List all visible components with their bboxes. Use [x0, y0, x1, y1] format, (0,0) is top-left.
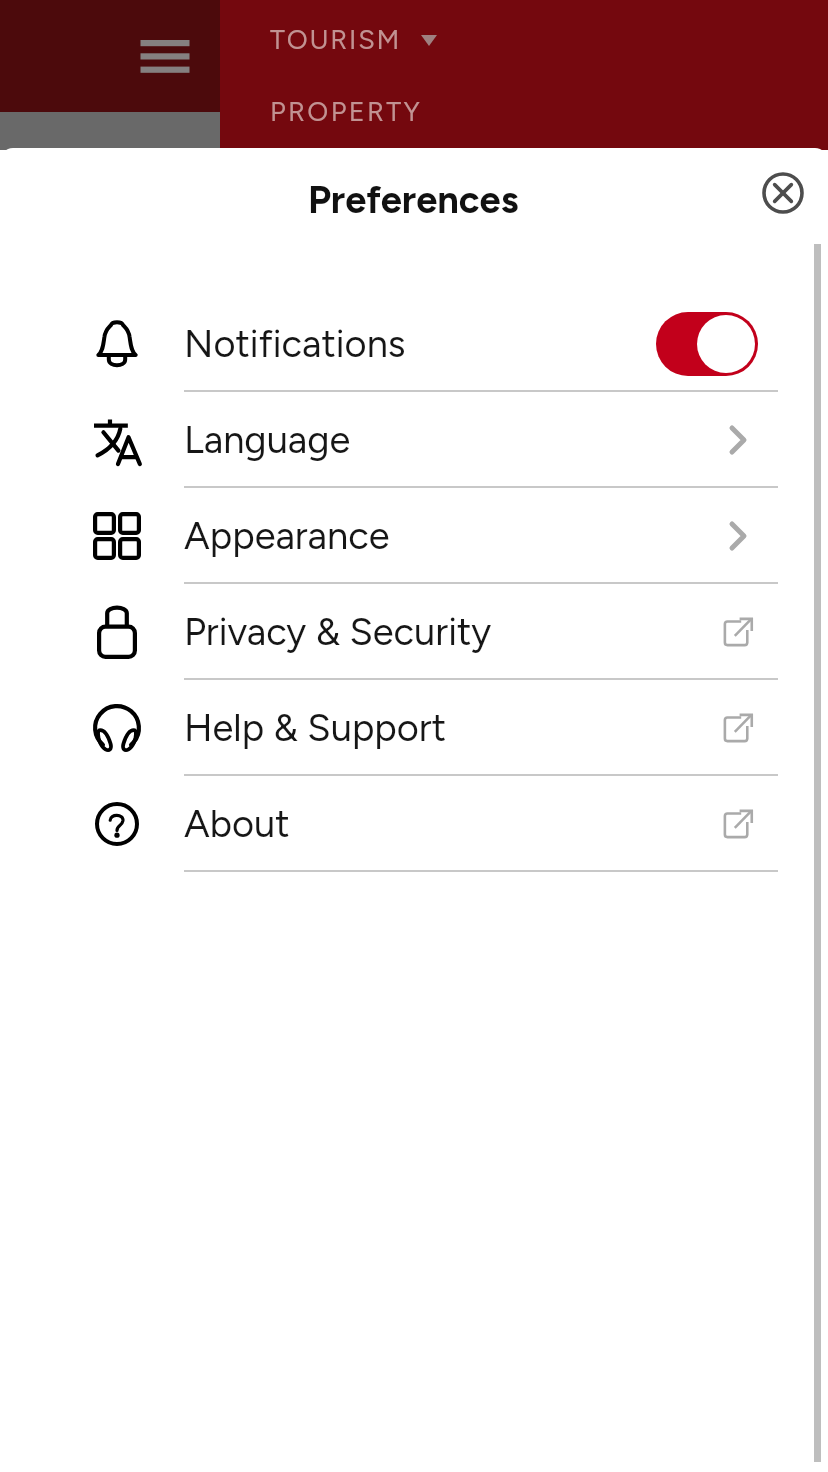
button[interactable]: TOURISM [270, 23, 437, 55]
staticText: Appearance [184, 513, 390, 559]
staticText: Notifications [184, 321, 406, 367]
button[interactable]: Language [0, 392, 828, 488]
button[interactable]: Notifications [0, 296, 828, 392]
button[interactable]: Close preferences [752, 162, 814, 224]
staticText: Privacy & Security [184, 609, 492, 655]
button[interactable]: Appearance [0, 488, 828, 584]
button[interactable]: Help & Support [0, 680, 828, 776]
staticText: TOURISM [270, 23, 402, 55]
staticText: About [184, 801, 290, 847]
staticText: Preferences [308, 177, 519, 223]
button[interactable]: Notifications toggle [656, 312, 758, 376]
button[interactable]: PROPERTY [270, 95, 423, 127]
button[interactable]: Open navigation menu [122, 15, 206, 99]
button[interactable]: About [0, 776, 828, 872]
staticText: Language [184, 417, 351, 463]
button[interactable]: Privacy & Security [0, 584, 828, 680]
staticText: Help & Support [184, 705, 447, 751]
